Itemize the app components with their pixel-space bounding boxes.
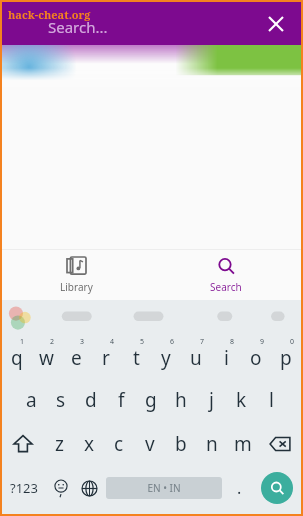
staticText: b <box>175 431 187 457</box>
button[interactable]: 0 <box>271 332 301 378</box>
staticText: 4 <box>110 337 115 347</box>
button[interactable]: f <box>106 378 136 422</box>
staticText: t <box>133 345 140 371</box>
staticText: q <box>11 345 23 371</box>
staticText: w <box>39 345 54 371</box>
staticText: k <box>236 387 247 413</box>
staticText: x <box>84 431 95 457</box>
button[interactable]: n <box>196 422 227 466</box>
staticText: f <box>118 387 125 413</box>
button[interactable]: v <box>134 422 165 466</box>
button[interactable]: EN • IN <box>106 477 222 499</box>
button[interactable]: c <box>104 422 134 466</box>
staticText: ?123 <box>10 479 38 497</box>
button[interactable]: a <box>16 378 46 422</box>
staticText: Search <box>210 280 242 294</box>
staticText: z <box>55 431 64 457</box>
button[interactable]: z <box>44 422 74 466</box>
button[interactable]: 6 <box>151 332 181 378</box>
button[interactable]: 1 <box>2 332 31 378</box>
staticText: e <box>71 345 82 371</box>
button[interactable]: 7 <box>181 332 211 378</box>
staticText: y <box>161 345 171 371</box>
button[interactable]: Search <box>151 250 301 300</box>
button[interactable]: 8 <box>211 332 241 378</box>
staticText: o <box>250 345 262 371</box>
button[interactable]: 3 <box>61 332 91 378</box>
button[interactable]: b <box>165 422 196 466</box>
staticText: j <box>209 387 214 413</box>
button[interactable]: Close <box>259 7 293 41</box>
button[interactable]: x <box>74 422 104 466</box>
staticText: d <box>85 387 97 413</box>
staticText: 7 <box>200 337 205 347</box>
button[interactable]: Change language <box>75 466 103 510</box>
button[interactable]: k <box>226 378 256 422</box>
staticText: n <box>206 431 218 457</box>
button[interactable]: Library <box>2 250 151 300</box>
staticText: 0 <box>290 337 295 347</box>
button[interactable]: m <box>227 422 258 466</box>
button[interactable]: 4 <box>91 332 121 378</box>
staticText: a <box>26 387 37 413</box>
staticText: EN • IN <box>147 481 181 495</box>
staticText: m <box>234 431 252 457</box>
button[interactable]: d <box>76 378 106 422</box>
staticText: c <box>114 431 124 457</box>
button[interactable]: j <box>196 378 226 422</box>
button[interactable]: 2 <box>31 332 61 378</box>
button[interactable]: 5 <box>121 332 151 378</box>
staticText: 2 <box>50 337 55 347</box>
button[interactable]: Shift <box>2 422 44 466</box>
staticText: . <box>237 477 242 499</box>
button[interactable]: s <box>46 378 76 422</box>
button[interactable]: l <box>256 378 286 422</box>
staticText: l <box>269 387 274 413</box>
button[interactable]: 9 <box>241 332 271 378</box>
staticText: 8 <box>230 337 235 347</box>
staticText: 6 <box>170 337 175 347</box>
button[interactable]: ?123 <box>2 466 46 510</box>
staticText: p <box>280 345 292 371</box>
staticText: 5 <box>140 337 145 347</box>
staticText: Search... <box>48 17 108 37</box>
button[interactable]: . <box>225 466 253 510</box>
staticText: s <box>56 387 66 413</box>
staticText: r <box>102 345 110 371</box>
staticText: 9 <box>260 337 265 347</box>
button[interactable]: Emoji <box>46 466 75 510</box>
staticText: 3 <box>80 337 85 347</box>
button[interactable]: Search <box>253 466 301 510</box>
staticText: i <box>224 345 229 371</box>
staticText: g <box>145 387 157 413</box>
button[interactable]: Backspace <box>258 422 301 466</box>
button[interactable]: g <box>136 378 166 422</box>
staticText: Library <box>60 280 93 294</box>
staticText: hack-cheat.org <box>8 7 91 22</box>
staticText: h <box>175 387 187 413</box>
staticText: v <box>145 431 155 457</box>
staticText: 1 <box>20 337 25 347</box>
staticText: u <box>190 345 202 371</box>
button[interactable]: h <box>166 378 196 422</box>
